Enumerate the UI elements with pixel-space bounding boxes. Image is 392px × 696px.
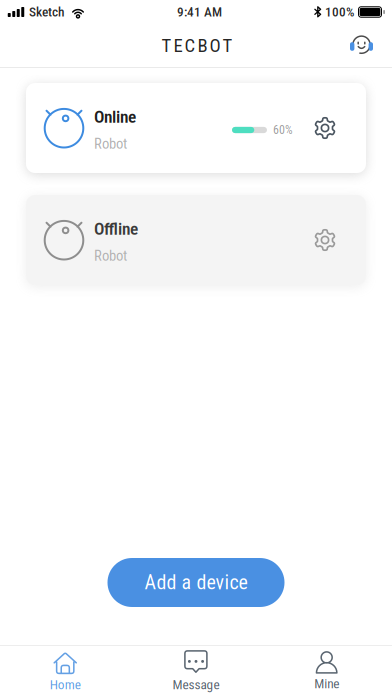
staticText: Sketch xyxy=(29,4,65,20)
staticText: Add a device xyxy=(144,571,247,594)
button[interactable]: Online xyxy=(26,83,366,173)
staticText: TECBOT xyxy=(161,35,232,56)
staticText: 100% xyxy=(325,4,354,20)
staticText: Message xyxy=(172,677,219,693)
staticText: Mine xyxy=(314,676,339,692)
staticText: 9:41 AM xyxy=(177,4,222,20)
button[interactable]: Offline xyxy=(26,195,366,285)
staticText: Offline xyxy=(94,219,138,239)
button[interactable]: Add a device xyxy=(107,558,284,607)
staticText: Robot xyxy=(94,135,127,152)
button[interactable]: Message xyxy=(131,646,261,696)
button[interactable]: Customer support xyxy=(340,26,392,64)
button[interactable]: Home xyxy=(0,646,131,696)
staticText: 60% xyxy=(273,123,293,137)
staticText: Online xyxy=(94,107,136,127)
staticText: Robot xyxy=(94,247,127,264)
button[interactable]: Mine xyxy=(261,646,392,696)
staticText: Home xyxy=(50,677,81,693)
